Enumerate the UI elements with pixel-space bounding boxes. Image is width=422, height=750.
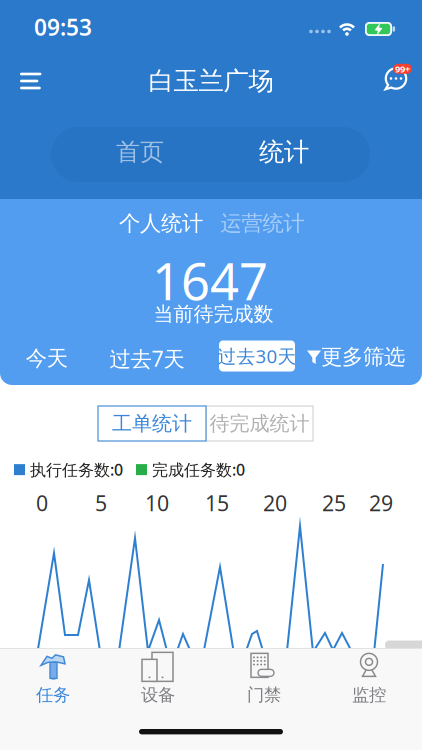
staticText: 15 [205,489,229,517]
staticText: 门禁 [247,684,281,706]
staticText: 工单统计 [112,411,192,436]
staticText: 1647 [152,247,268,314]
button[interactable]: 监控 [0,0,422,750]
button[interactable]: 运营统计 [0,0,422,750]
button[interactable]: 任务 [0,0,422,750]
staticText: 首页 [116,137,164,167]
staticText: 10 [145,489,169,517]
staticText: 白玉兰广场 [148,65,273,96]
staticText: 99+ [395,63,410,75]
button[interactable]: 今天 [0,0,422,750]
staticText: 运营统计 [220,210,304,237]
staticText: 25 [322,489,346,517]
button[interactable]: Menu [0,0,422,750]
staticText: 20 [263,489,287,517]
staticText: 09:53 [34,12,92,42]
staticText: 设备 [141,684,175,706]
staticText: 执行任务数:0 [30,459,123,480]
button[interactable]: 过去30天 [0,0,422,750]
button[interactable]: 更多筛选 [0,0,422,750]
button[interactable]: Messages [0,0,422,750]
staticText: 完成任务数:0 [152,459,245,480]
staticText: 过去30天 [217,344,296,368]
button[interactable]: 统计 [0,0,422,750]
staticText: 29 [369,489,393,517]
staticText: 过去7天 [109,344,184,373]
button[interactable]: 个人统计 [0,0,422,750]
staticText: 5 [95,489,107,517]
staticText: 待完成统计 [209,411,309,436]
staticText: 更多筛选 [321,344,405,370]
staticText: 统计 [259,136,309,167]
staticText: 监控 [352,684,386,706]
button[interactable]: 设备 [0,0,422,750]
staticText: 任务 [36,684,70,706]
staticText: 0 [36,489,48,517]
staticText: 个人统计 [119,210,203,237]
button[interactable]: 门禁 [0,0,422,750]
button[interactable]: 过去7天 [0,0,422,750]
staticText: 当前待完成数 [153,302,273,326]
button[interactable]: 工单统计 [0,0,422,750]
staticText: 今天 [26,345,68,372]
button[interactable]: 待完成统计 [0,0,422,750]
button[interactable]: 首页 [0,0,422,750]
